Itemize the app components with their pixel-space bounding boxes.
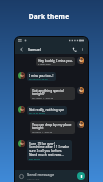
staticText: 28 mins to 20:46 [29,77,48,80]
staticText: Dark theme [0,12,98,21]
staticText: Hey buddy, I miss you. [38,58,73,62]
staticText: Samuel [28,47,41,52]
staticText: Got anything special tonight? [32,88,73,96]
staticText: You can drop by my place tonight [32,122,73,130]
staticText: 48 mins > just 20 [32,130,53,133]
staticText: Tap to chat [27,177,40,180]
staticText: 2 mins ago [38,62,51,65]
staticText: Not really, nothing spe [29,107,65,111]
button[interactable]: Emoji [18,173,25,180]
button[interactable]: More options [79,46,85,52]
button[interactable]: Call [70,45,78,53]
staticText: I miss you too..! [29,73,54,77]
staticText: 28:12pm > just 20 [32,96,54,99]
button[interactable]: Back [18,46,25,53]
button[interactable]: Send [77,172,85,180]
staticText: just 20:48 [29,157,40,160]
staticText: Send message [27,172,55,177]
staticText: Sure, I'll be over! Sometime after 11 I … [29,141,70,157]
staticText: 28:12 to 20:38 [29,111,45,114]
